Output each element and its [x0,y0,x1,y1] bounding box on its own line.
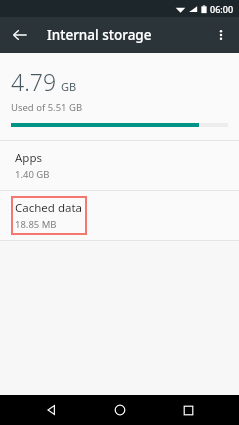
button[interactable]: Apps [0,141,239,190]
staticText: 18.85 MB [15,218,57,231]
staticText: 1.40 GB [15,168,50,181]
button[interactable]: Back [6,21,34,49]
staticText: GB [61,79,77,94]
staticText: 06:00 [210,3,234,15]
staticText: Apps [15,150,43,166]
button[interactable]: Recent apps [170,395,206,425]
staticText: Internal storage [47,26,152,44]
button[interactable]: Back [33,395,69,425]
staticText: Cached data [15,200,83,216]
staticText: 4.79 [11,66,57,97]
staticText: Used of 5.51 GB [11,101,83,114]
button[interactable]: Cached data [0,191,239,240]
button[interactable]: Home [102,395,138,425]
button[interactable]: More options [207,21,235,49]
